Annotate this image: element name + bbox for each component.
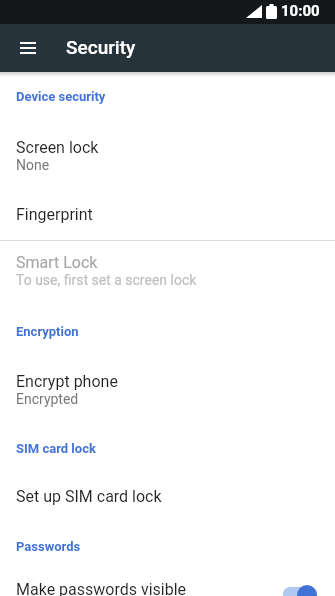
staticText: Security [66,36,136,58]
button[interactable]: Make passwords visible [0,568,335,596]
staticText: To use, first set a screen lock [16,272,197,288]
staticText: Encrypt phone [16,372,118,391]
staticText: Passwords [16,539,81,554]
staticText: Device security [16,89,106,104]
button[interactable]: Set up SIM card lock [0,469,335,523]
staticText: SIM card lock [16,441,96,456]
staticText: None [16,157,50,173]
staticText: Encryption [16,324,79,339]
button[interactable]: Fingerprint [0,188,335,240]
button[interactable]: Smart Lock [0,239,335,301]
staticText: Fingerprint [16,205,93,224]
staticText: Smart Lock [16,253,98,272]
staticText: 10:00 [281,2,320,20]
staticText: Set up SIM card lock [16,487,162,506]
staticText: Screen lock [16,138,99,157]
staticText: Make passwords visible [16,580,187,596]
staticText: Encrypted [16,391,79,407]
button[interactable]: Encrypt phone [0,358,335,420]
button[interactable] [0,24,56,72]
button[interactable]: Screen lock [0,124,335,186]
